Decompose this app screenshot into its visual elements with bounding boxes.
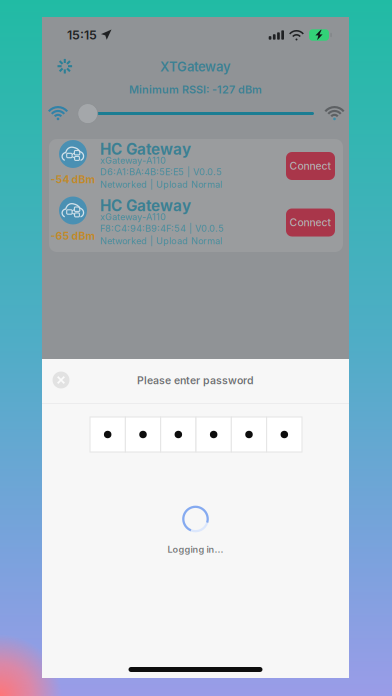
staticText: Please enter password xyxy=(137,374,254,387)
staticText: Networked | Upload Normal xyxy=(100,179,222,190)
button[interactable]: -65 dBm xyxy=(49,195,343,252)
button[interactable]: Close xyxy=(43,362,79,398)
staticText: 15:15 xyxy=(67,27,97,42)
staticText: HC Gateway xyxy=(100,140,191,158)
button[interactable]: -54 dBm xyxy=(49,139,343,195)
staticText: xGateway-A110 xyxy=(100,211,166,222)
staticText: Connect xyxy=(289,216,331,229)
staticText: Connect xyxy=(289,160,331,172)
staticText: -54 dBm xyxy=(50,173,95,186)
staticText: HC Gateway xyxy=(100,196,191,215)
staticText: XTGateway xyxy=(160,59,231,75)
staticText: xGateway-A110 xyxy=(100,155,166,166)
staticText: Networked | Upload Normal xyxy=(100,235,222,246)
staticText: D6:A1:BA:4B:5E:E5 | V0.0.5 xyxy=(100,166,222,178)
staticText: F8:C4:94:B9:4F:54 | V0.0.5 xyxy=(100,223,224,234)
staticText: -65 dBm xyxy=(50,229,95,242)
staticText: Logging in... xyxy=(167,544,223,555)
staticText: Minimum RSSI: -127 dBm xyxy=(129,83,262,96)
